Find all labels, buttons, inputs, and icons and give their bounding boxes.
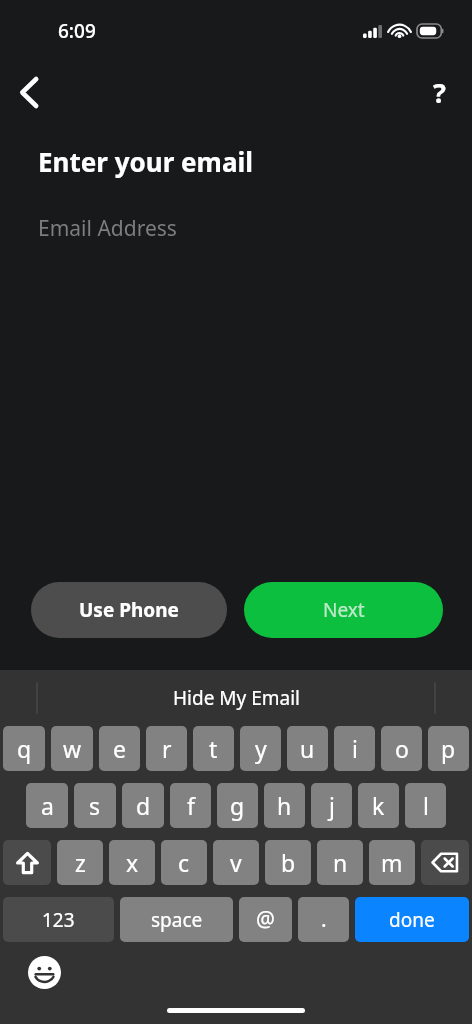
button[interactable]: x [109,840,155,885]
staticText: e [113,733,126,764]
button[interactable]: j [311,783,352,828]
staticText: Enter your email [38,144,253,179]
staticText: 6:09 [58,18,96,44]
button[interactable]: b [265,840,311,885]
staticText: g [230,790,245,821]
button[interactable]: 123 [3,897,114,942]
button[interactable]: t [193,726,234,771]
button[interactable]: Help [416,69,462,115]
button[interactable]: Shift [3,840,51,885]
button[interactable]: s [74,783,116,828]
staticText: k [372,790,385,821]
button[interactable]: @ [239,897,292,942]
button[interactable]: Email Address [0,205,472,251]
button[interactable]: n [317,840,363,885]
staticText: i [352,733,358,764]
staticText: y [255,733,267,764]
staticText: d [136,790,151,821]
button[interactable]: Next [244,582,443,638]
button[interactable]: r [146,726,187,771]
staticText: space [151,907,203,933]
staticText: Hide My Email [173,685,300,711]
button[interactable]: f [170,783,211,828]
staticText: l [423,790,429,821]
staticText: j [329,790,335,821]
staticText: done [389,907,435,933]
staticText: 123 [42,907,75,933]
button[interactable]: k [358,783,399,828]
button[interactable]: h [264,783,305,828]
staticText: u [300,733,315,764]
button[interactable]: o [381,726,422,771]
button[interactable]: u [287,726,328,771]
button[interactable]: g [217,783,258,828]
staticText: Use Phone [79,597,179,623]
button[interactable]: c [161,840,207,885]
staticText: f [187,790,195,821]
staticText: m [381,847,403,878]
staticText: w [63,733,82,764]
button[interactable]: Back [6,69,52,115]
button[interactable]: space [120,897,233,942]
staticText: x [126,847,139,878]
button[interactable]: p [428,726,469,771]
button[interactable]: l [405,783,446,828]
staticText: Email Address [38,214,177,243]
button[interactable]: v [213,840,259,885]
staticText: a [41,790,54,821]
staticText: r [162,733,172,764]
button[interactable]: z [57,840,103,885]
button[interactable]: m [369,840,415,885]
staticText: ? [433,74,446,111]
button[interactable]: d [122,783,164,828]
staticText: z [75,847,86,878]
staticText: o [395,733,409,764]
button[interactable]: i [334,726,375,771]
button[interactable]: a [26,783,68,828]
button[interactable]: Hide My Email [0,670,472,726]
staticText: n [333,847,348,878]
staticText: t [209,733,218,764]
staticText: p [441,733,456,764]
staticText: @ [256,905,275,934]
button[interactable]: . [298,897,349,942]
button[interactable]: done [355,897,469,942]
button[interactable]: Use Phone [31,582,227,638]
staticText: . [321,905,327,934]
staticText: b [281,847,296,878]
staticText: v [230,847,242,878]
staticText: s [89,790,101,821]
button[interactable]: y [240,726,281,771]
button[interactable]: Emoji [22,950,66,994]
button[interactable]: q [3,726,45,771]
button[interactable]: w [51,726,93,771]
staticText: q [17,733,32,764]
button[interactable]: Backspace [421,840,469,885]
button[interactable]: e [99,726,140,771]
staticText: c [178,847,190,878]
staticText: Next [323,597,365,623]
staticText: h [277,790,292,821]
